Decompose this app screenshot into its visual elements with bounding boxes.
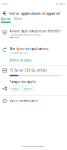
button[interactable]: Recevoir <box>22 86 34 91</box>
staticText: Afficher les détails <box>9 59 31 62</box>
staticText: Recevoir <box>24 87 32 90</box>
staticText: 82 % <box>60 2 65 5</box>
staticText: lieu il y a 1 heure <box>9 36 19 38</box>
staticText: Avis et commentaires <box>9 99 37 102</box>
button[interactable]: Aucune appli dangereuse détectée <box>0 27 67 40</box>
staticText: Envoyer <box>11 87 18 90</box>
staticText: Aucune appli dangereuse détectée <box>9 29 60 33</box>
staticText: 16 Go sur 128 Go utilisés <box>9 69 46 72</box>
button[interactable]: 16 Go sur 128 Go utilisés <box>0 68 67 72</box>
staticText: La dernière analyse par Play Protect a e… <box>9 34 40 36</box>
staticText: Gérer <box>14 17 22 21</box>
button[interactable]: Envoyer <box>9 86 20 91</box>
staticText: Mise à jour des applications… <box>9 47 49 51</box>
staticText: 10:15 <box>2 2 7 5</box>
button[interactable]: Retour <box>0 8 9 18</box>
button[interactable]: Aperçu <box>1 19 11 27</box>
button[interactable]: Avis et commentaires <box>0 98 67 103</box>
staticText: Partager des applis <box>9 80 35 84</box>
staticText: 1 mise à jour en attente <box>9 51 27 54</box>
staticText: Aperçu <box>1 17 11 21</box>
staticText: Gérer applications et appareil <box>9 11 60 16</box>
staticText: 4G <box>56 2 59 5</box>
button[interactable]: Mise à jour des applications… <box>0 45 67 55</box>
button[interactable]: Afficher les détails <box>0 59 66 62</box>
